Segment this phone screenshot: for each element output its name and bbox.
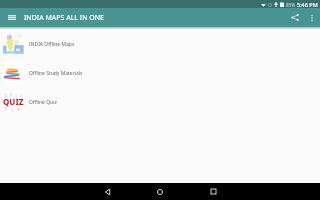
staticText: QUIZ [3,96,24,107]
staticText: Offline Study Materials [29,70,83,77]
staticText: INDIA Offline Maps [29,41,75,48]
button[interactable]: Home [149,183,171,200]
button[interactable]: More options [304,8,320,27]
button[interactable]: QUIZ [0,88,320,117]
button[interactable]: Back [96,183,118,200]
staticText: 85% [286,2,295,8]
staticText: INDIA MAPS ALL IN ONE [24,13,105,23]
staticText: Offline Quiz [29,99,57,106]
button[interactable]: Offline Study Materials [0,59,320,88]
button[interactable]: Open navigation drawer [0,8,24,27]
staticText: 5:46 PM [297,1,318,8]
button[interactable]: Share [286,8,304,27]
button[interactable]: INDIA Offline Maps [0,30,320,59]
button[interactable]: Recent apps [202,183,224,200]
